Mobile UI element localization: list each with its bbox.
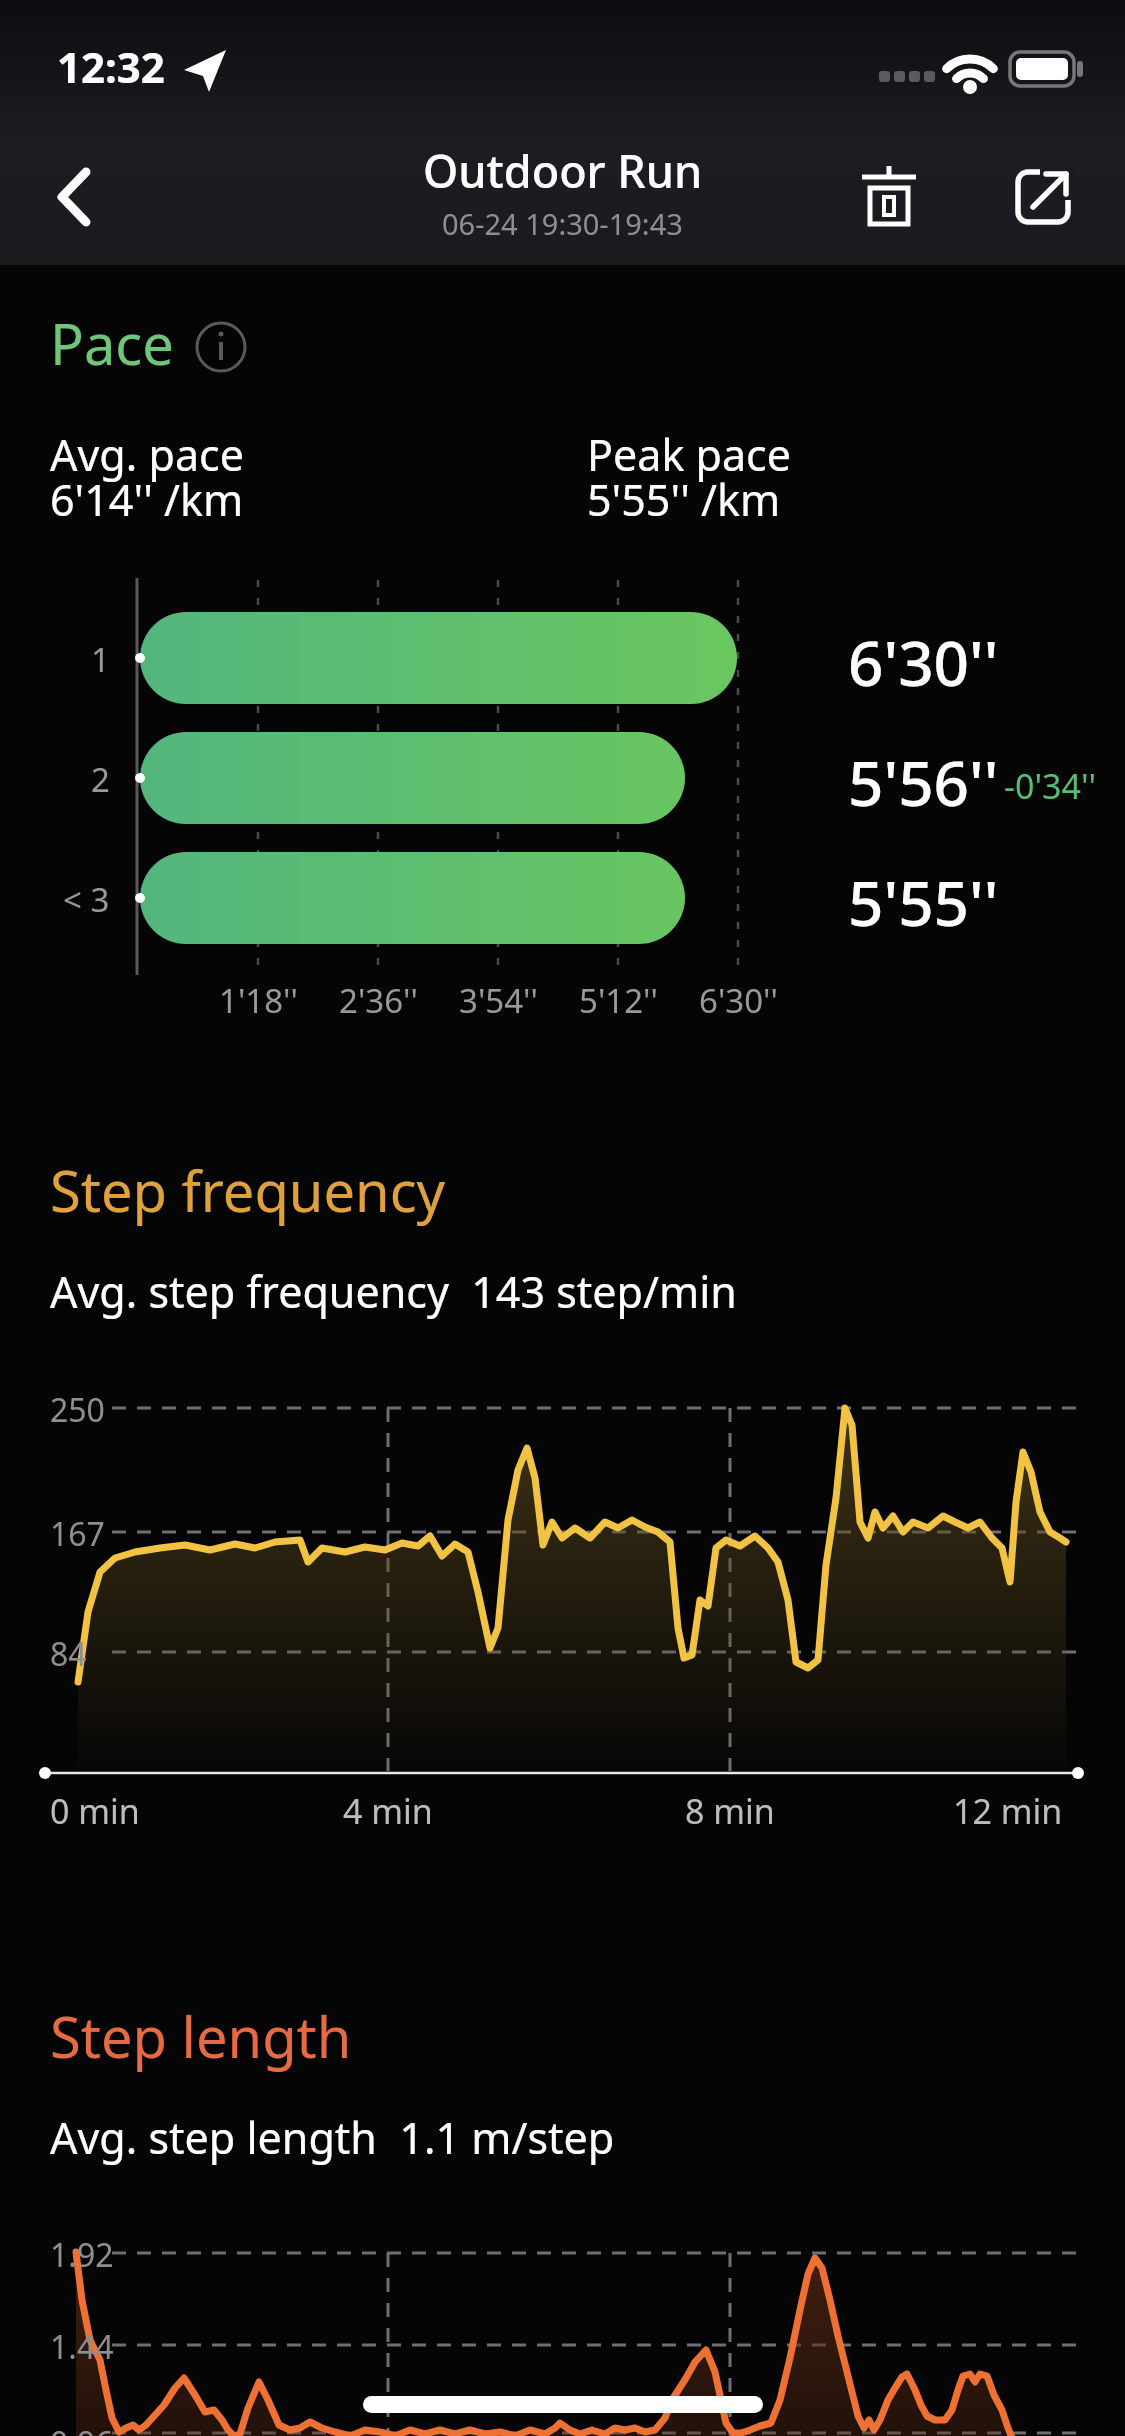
staticText: 5'55'' — [848, 860, 999, 944]
staticText: 6'14'' /km — [50, 470, 244, 529]
staticText: Avg. pace — [50, 425, 244, 484]
staticText: Step length — [50, 1998, 352, 2074]
staticText: Peak pace — [587, 425, 791, 484]
staticText: 5'55'' /km — [587, 470, 781, 529]
staticText: 1'18'' — [219, 978, 298, 1023]
staticText: 6'30'' — [848, 620, 999, 704]
staticText: Avg. step frequency 143 step/min — [50, 1262, 737, 1321]
staticText: 2 — [91, 757, 110, 802]
staticText: 250 — [50, 1388, 105, 1432]
staticText: 8 min — [685, 1788, 775, 1834]
staticText: 167 — [50, 1512, 105, 1556]
staticText: 3'54'' — [459, 978, 538, 1023]
staticText: 0.96 — [50, 2421, 114, 2436]
staticText: 5'56'' — [848, 740, 999, 824]
staticText: 4 min — [343, 1788, 433, 1834]
staticText: 12:32 — [57, 38, 165, 95]
staticText: 0 min — [50, 1788, 140, 1834]
staticText: -0'34'' — [1004, 763, 1097, 809]
staticText: 84 — [50, 1632, 87, 1676]
staticText: 12 min — [953, 1788, 1063, 1834]
staticText: 2'36'' — [339, 978, 418, 1023]
staticText: 5'12'' — [579, 978, 658, 1023]
staticText: < 3 — [63, 877, 110, 922]
staticText: 1.92 — [50, 2233, 114, 2277]
staticText: Step frequency — [50, 1152, 446, 1228]
staticText: Avg. step length 1.1 m/step — [50, 2108, 615, 2167]
staticText: Outdoor Run — [423, 140, 703, 201]
staticText: 06-24 19:30-19:43 — [442, 204, 683, 243]
staticText: 1 — [91, 637, 110, 682]
staticText: 1.44 — [50, 2325, 114, 2369]
staticText: Pace — [50, 305, 174, 381]
staticText: 6'30'' — [699, 978, 778, 1023]
